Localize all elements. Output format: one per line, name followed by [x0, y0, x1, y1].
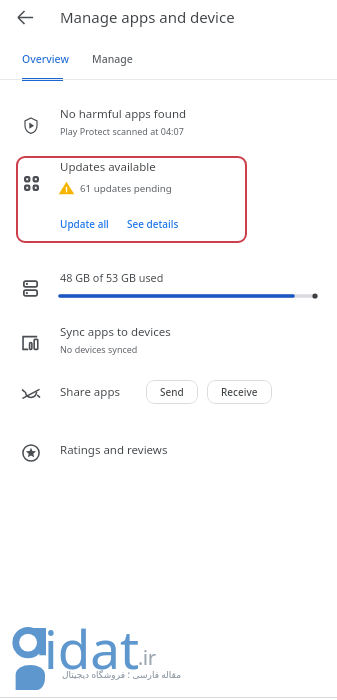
- button[interactable]: Manage: [82, 52, 143, 82]
- staticText: Share apps: [60, 384, 120, 400]
- staticText: مقاله فارسی ؛ فروشگاه دیجیتال: [62, 668, 181, 680]
- button[interactable]: Receive: [207, 380, 272, 404]
- staticText: Receive: [221, 385, 258, 399]
- button[interactable]: Update all: [60, 213, 109, 235]
- staticText: Ratings and reviews: [60, 442, 168, 458]
- button[interactable]: Back: [11, 3, 39, 31]
- staticText: Overview: [22, 52, 69, 66]
- button[interactable]: See details: [127, 213, 179, 235]
- button[interactable]: 48 GB of 53 GB used: [0, 270, 337, 299]
- staticText: idat: [44, 612, 140, 684]
- staticText: Sync apps to devices: [60, 324, 171, 340]
- staticText: Send: [160, 385, 184, 399]
- button[interactable]: Overview: [12, 52, 79, 82]
- staticText: 61 updates pending: [80, 182, 172, 195]
- staticText: .ir: [138, 645, 156, 671]
- staticText: Manage apps and device: [60, 7, 235, 27]
- staticText: 48 GB of 53 GB used: [60, 270, 164, 285]
- staticText: Manage: [92, 52, 133, 66]
- button[interactable]: Ratings and reviews: [0, 434, 337, 466]
- button[interactable]: Sync apps to devices: [0, 320, 337, 358]
- staticText: Updates available: [60, 159, 156, 175]
- staticText: No devices synced: [60, 343, 138, 355]
- button[interactable]: Send: [146, 380, 198, 404]
- staticText: Play Protect scanned at 04:07: [60, 125, 184, 137]
- staticText: See details: [127, 217, 179, 231]
- staticText: Update all: [60, 217, 109, 231]
- button[interactable]: No harmful apps found: [0, 102, 337, 140]
- staticText: No harmful apps found: [60, 106, 187, 122]
